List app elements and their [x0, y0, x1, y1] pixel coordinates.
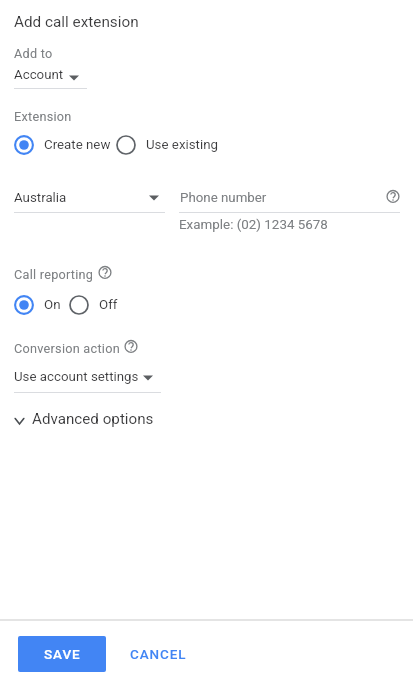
- button[interactable]: Create new: [14, 135, 111, 155]
- staticText: Extension: [14, 109, 72, 124]
- button[interactable]: Australia: [14, 185, 165, 211]
- staticText: Off: [99, 297, 118, 313]
- staticText: Advanced options: [32, 410, 154, 428]
- staticText: Add call extension: [14, 13, 139, 31]
- staticText: Account: [14, 67, 64, 83]
- staticText: On: [44, 297, 61, 313]
- staticText: Conversion action: [14, 341, 120, 356]
- other: Help: [124, 339, 138, 357]
- button[interactable]: Use existing: [116, 135, 218, 155]
- other: Help: [98, 265, 112, 283]
- staticText: SAVE: [44, 646, 81, 662]
- staticText: Call reporting: [14, 267, 94, 282]
- staticText: Use account settings: [14, 369, 139, 385]
- staticText: Add to: [14, 46, 53, 61]
- staticText: Phone number: [180, 190, 267, 206]
- staticText: CANCEL: [130, 646, 187, 662]
- staticText: Create new: [44, 137, 111, 153]
- button[interactable]: Off: [69, 295, 118, 315]
- other: Help: [386, 189, 400, 207]
- button[interactable]: SAVE: [18, 636, 106, 672]
- button[interactable]: Use account settings: [14, 366, 161, 391]
- button[interactable]: On: [14, 295, 61, 315]
- button[interactable]: Advanced options: [13, 409, 154, 429]
- button[interactable]: CANCEL: [122, 636, 194, 672]
- button[interactable]: Account: [14, 67, 92, 83]
- button[interactable]: Phone number: [180, 189, 400, 207]
- staticText: Use existing: [146, 137, 218, 153]
- staticText: Example: (02) 1234 5678: [179, 217, 328, 233]
- staticText: Australia: [14, 190, 67, 206]
